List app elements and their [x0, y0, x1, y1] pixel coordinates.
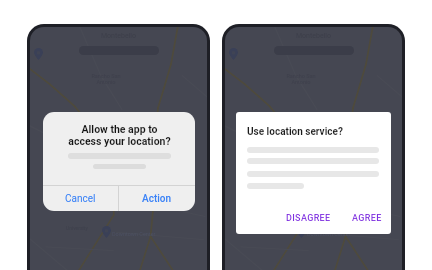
button[interactable]: Cancel [43, 186, 118, 211]
staticText: Action [142, 193, 172, 205]
staticText: AGREE [352, 213, 382, 224]
staticText: Use location service? [247, 126, 343, 138]
staticText: DISAGREE [286, 213, 331, 224]
staticText: Cancel [65, 193, 96, 205]
staticText: Downtown Center [112, 231, 156, 237]
button[interactable]: Action [119, 186, 195, 211]
staticText: Allow the app to access your location? [68, 123, 171, 148]
button[interactable]: DISAGREE [283, 210, 334, 227]
button[interactable]: AGREE [349, 210, 385, 227]
staticText: Downtown Center [307, 231, 351, 237]
